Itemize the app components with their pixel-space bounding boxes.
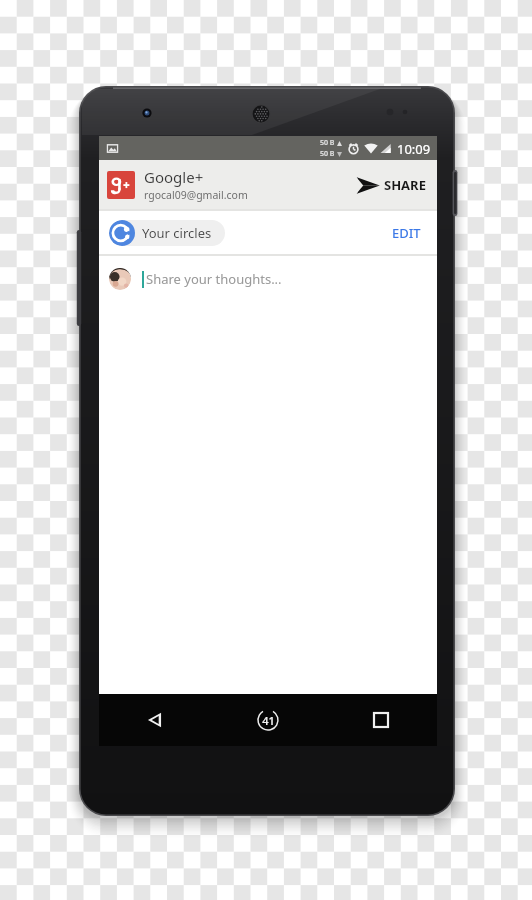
staticText: rgocal09@gmail.com [144, 188, 248, 202]
button[interactable]: Share your thoughts... [99, 256, 437, 302]
button[interactable]: Your circles [109, 220, 225, 246]
button[interactable]: Back [99, 694, 211, 746]
staticText: Your circles [142, 224, 212, 242]
staticText: Google+ [144, 167, 204, 187]
staticText: 41 [262, 713, 275, 728]
staticText: SHARE [384, 176, 426, 194]
staticText: 50 B [320, 149, 335, 159]
other: Share [356, 177, 380, 194]
staticText: 10:09 [397, 140, 431, 158]
staticText: 50 B [320, 138, 335, 148]
button[interactable]: Recent apps [324, 694, 437, 746]
staticText: EDIT [392, 224, 421, 242]
button[interactable]: Google+ [99, 160, 437, 209]
staticText: Share your thoughts... [146, 270, 282, 288]
button[interactable]: Share [353, 172, 429, 198]
button[interactable]: Home [211, 694, 324, 746]
button[interactable]: EDIT [386, 219, 427, 247]
